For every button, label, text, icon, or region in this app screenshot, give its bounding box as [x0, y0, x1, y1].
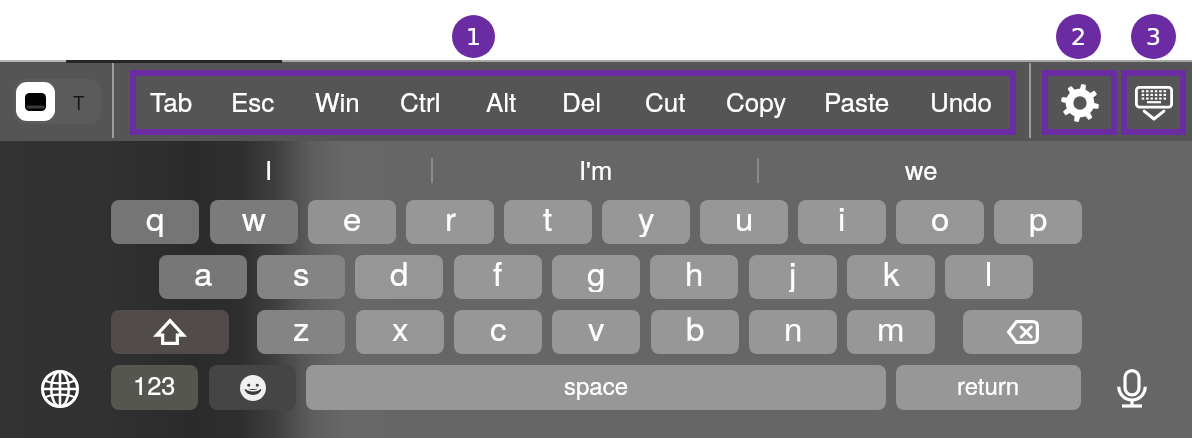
staticText: n [784, 310, 803, 347]
button[interactable]: Paste [802, 74, 912, 126]
staticText: Paste [824, 82, 890, 119]
button[interactable]: b [651, 310, 739, 354]
button[interactable]: i [798, 200, 886, 244]
staticText: s [293, 255, 310, 292]
staticText: Undo [930, 82, 993, 119]
button[interactable]: Settings [1042, 70, 1117, 135]
button[interactable]: d [355, 255, 443, 299]
button[interactable]: p [994, 200, 1082, 244]
staticText: Cut [645, 82, 686, 119]
staticText: k [883, 255, 900, 292]
button[interactable]: a [159, 255, 247, 299]
button[interactable]: v [552, 310, 640, 354]
button[interactable]: Voice input [1107, 364, 1157, 413]
staticText: Del [562, 82, 602, 119]
button[interactable] [111, 310, 229, 354]
button[interactable]: Switch language [36, 365, 84, 413]
staticText: Ctrl [400, 82, 441, 119]
staticText: d [390, 255, 409, 292]
staticText: a [194, 255, 213, 292]
button[interactable]: s [257, 255, 345, 299]
button[interactable]: Alt [446, 74, 556, 126]
button[interactable]: I [105, 141, 432, 189]
button[interactable]: m [847, 310, 935, 354]
staticText: Copy [726, 82, 787, 119]
staticText: 3 [1146, 23, 1161, 50]
button[interactable]: Win [282, 74, 392, 126]
button[interactable]: I'm [432, 141, 759, 189]
button[interactable]: l [945, 255, 1033, 299]
button[interactable]: t [504, 200, 592, 244]
staticText: return [957, 367, 1020, 401]
button[interactable]: Hide keyboard [1121, 70, 1186, 135]
button[interactable]: j [749, 255, 837, 299]
button[interactable]: Copy [701, 74, 811, 126]
button[interactable]: space [306, 365, 886, 410]
staticText: h [685, 255, 704, 292]
staticText: i [838, 200, 846, 237]
button[interactable]: r [406, 200, 494, 244]
button[interactable]: w [210, 200, 298, 244]
staticText: we [905, 151, 938, 188]
button[interactable]: Ctrl [365, 74, 475, 126]
staticText: l [985, 255, 993, 292]
button[interactable]: y [602, 200, 690, 244]
staticText: j [789, 255, 797, 292]
staticText: q [146, 200, 165, 237]
staticText: z [293, 310, 310, 347]
button[interactable]: o [896, 200, 984, 244]
button[interactable]: Esc [198, 74, 308, 126]
button[interactable] [209, 365, 296, 410]
button[interactable]: q [111, 200, 199, 244]
staticText: Esc [231, 82, 275, 119]
button[interactable]: h [650, 255, 738, 299]
staticText: u [735, 200, 754, 237]
staticText: T [73, 88, 85, 115]
button[interactable]: g [552, 255, 640, 299]
staticText: w [242, 200, 266, 237]
button[interactable]: e [308, 200, 396, 244]
staticText: Alt [486, 82, 517, 119]
button[interactable]: T [14, 79, 101, 124]
button[interactable]: return [896, 365, 1081, 410]
button[interactable]: we [758, 141, 1085, 189]
staticText: Tab [150, 82, 193, 119]
button[interactable]: 123 [111, 365, 198, 410]
button[interactable]: z [257, 310, 345, 354]
staticText: m [877, 310, 905, 347]
button[interactable]: Cut [610, 74, 720, 126]
staticText: 123 [133, 366, 176, 403]
staticText: v [588, 310, 605, 347]
button[interactable]: x [356, 310, 444, 354]
staticText: space [564, 367, 629, 401]
staticText: g [587, 255, 606, 292]
staticText: b [686, 310, 705, 347]
staticText: p [1029, 200, 1048, 237]
staticText: c [490, 310, 507, 347]
button[interactable]: Tab [116, 74, 226, 126]
staticText: 1 [466, 23, 481, 50]
button[interactable]: Undo [906, 74, 1016, 126]
staticText: x [392, 310, 409, 347]
button[interactable]: k [847, 255, 935, 299]
button[interactable] [963, 310, 1082, 354]
staticText: o [931, 200, 950, 237]
staticText: Win [315, 82, 360, 119]
staticText: r [445, 200, 456, 237]
staticText: I'm [579, 151, 613, 188]
staticText: t [543, 200, 553, 237]
staticText: 2 [1071, 23, 1086, 50]
staticText: f [493, 255, 503, 292]
button[interactable]: Del [527, 74, 637, 126]
staticText: I [265, 151, 273, 188]
staticText: e [343, 200, 362, 237]
button[interactable]: n [749, 310, 837, 354]
staticText: y [638, 200, 655, 237]
button[interactable]: c [454, 310, 542, 354]
button[interactable]: u [700, 200, 788, 244]
button[interactable]: f [454, 255, 542, 299]
